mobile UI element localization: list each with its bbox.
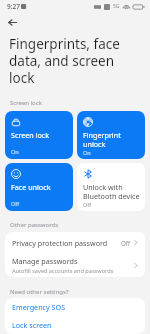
button[interactable]: Lock screen <box>5 316 145 334</box>
staticText: Face unlock <box>11 182 51 192</box>
staticText: Privacy protection password <box>12 238 108 248</box>
staticText: Fingerprints, face data, and screen lock <box>9 35 141 87</box>
staticText: Lock screen <box>12 320 52 330</box>
button[interactable]: Manage passwords <box>5 253 145 277</box>
staticText: Emergency SOS <box>12 302 66 312</box>
staticText: Screen lock <box>10 99 42 107</box>
staticText: Screen lock <box>11 130 50 140</box>
staticText: On <box>11 148 19 155</box>
staticText: 5G <box>113 3 120 10</box>
staticText: Off <box>83 201 92 207</box>
staticText: Manage passwords <box>12 256 78 266</box>
staticText: Fingerprint unlock <box>83 130 121 149</box>
staticText: Autofill saved accounts and passwords <box>12 267 114 275</box>
button[interactable]: Unlock with Bluetooth device <box>77 163 145 211</box>
button[interactable]: Screen lock <box>5 111 73 159</box>
staticText: Other passwords <box>10 221 59 229</box>
button[interactable]: Fingerprint unlock <box>77 111 145 159</box>
button[interactable]: Face unlock <box>5 163 73 211</box>
button[interactable]: Back <box>4 14 20 30</box>
staticText: Unlock with Bluetooth device <box>83 182 140 201</box>
staticText: Off <box>121 239 131 247</box>
staticText: Off <box>11 200 20 207</box>
staticText: On <box>83 149 91 155</box>
button[interactable]: Privacy protection password <box>5 232 145 253</box>
staticText: 9:27 <box>7 2 20 11</box>
staticText: Need other settings? <box>10 288 69 296</box>
button[interactable]: Emergency SOS <box>5 298 145 316</box>
